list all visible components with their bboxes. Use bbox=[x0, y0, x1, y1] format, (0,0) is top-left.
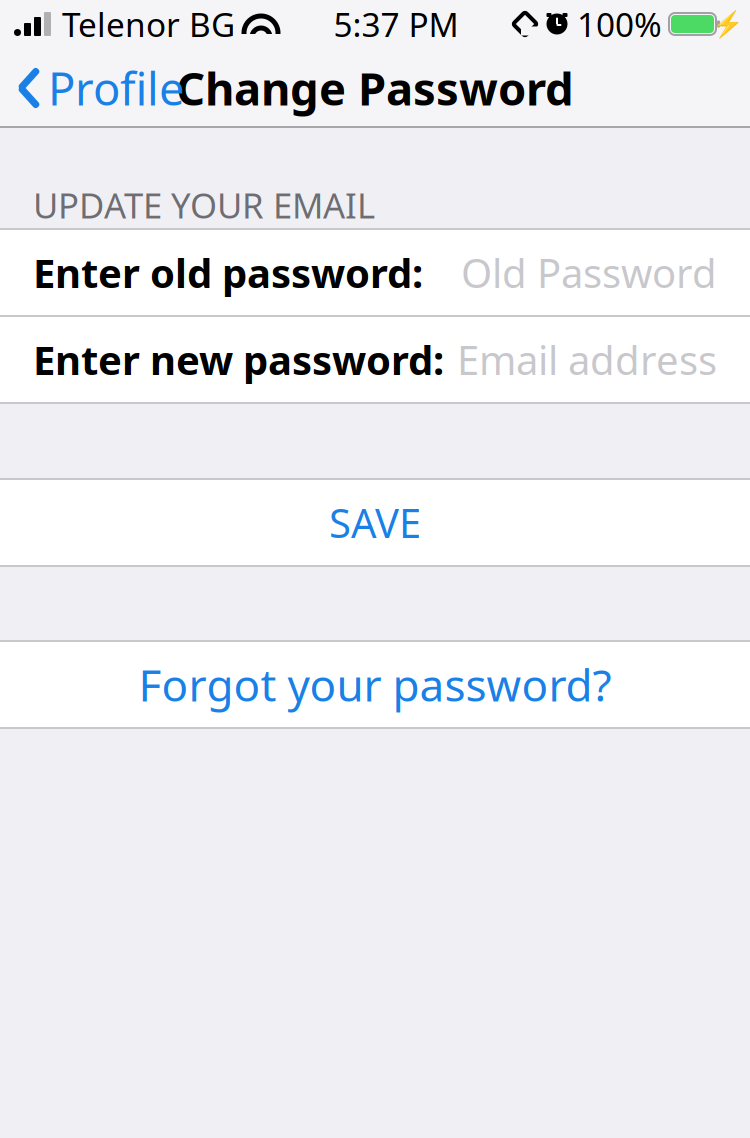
staticText: Telenor BG bbox=[62, 2, 235, 46]
button[interactable]: Forgot your password? bbox=[0, 642, 750, 727]
staticText: 5:37 PM bbox=[333, 2, 458, 46]
staticText: Enter new password: bbox=[33, 333, 444, 386]
staticText: 100% bbox=[577, 2, 662, 46]
staticText: SAVE bbox=[329, 496, 421, 549]
staticText: Email address bbox=[457, 333, 717, 386]
staticText: Forgot your password? bbox=[138, 655, 611, 714]
button[interactable]: Enter new password: bbox=[0, 317, 750, 402]
button[interactable]: SAVE bbox=[0, 480, 750, 565]
staticText: Enter old password: bbox=[33, 246, 423, 299]
staticText: Old Password bbox=[461, 246, 717, 299]
button[interactable]: Profile bbox=[0, 46, 185, 130]
staticText: UPDATE YOUR EMAIL bbox=[33, 182, 375, 228]
staticText: Profile bbox=[48, 58, 185, 118]
button[interactable]: Enter old password: bbox=[0, 230, 750, 315]
staticText: Change Password bbox=[176, 58, 574, 118]
staticText: ⚡ bbox=[712, 9, 744, 38]
